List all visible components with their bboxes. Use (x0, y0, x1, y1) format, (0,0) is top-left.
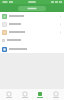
button[interactable]: Open (0, 12, 64, 20)
button[interactable] (0, 36, 64, 44)
button[interactable]: Discover (33, 89, 46, 100)
button[interactable] (0, 45, 64, 53)
button[interactable]: Search (18, 6, 46, 11)
button[interactable]: Chats (2, 89, 15, 100)
other: Open (59, 31, 62, 34)
button[interactable]: Open (0, 28, 64, 36)
other: Open (59, 15, 62, 18)
button[interactable]: Contacts (18, 89, 31, 100)
button[interactable]: Open (0, 20, 64, 28)
other: Open (59, 23, 62, 26)
button[interactable]: Me (49, 89, 62, 100)
